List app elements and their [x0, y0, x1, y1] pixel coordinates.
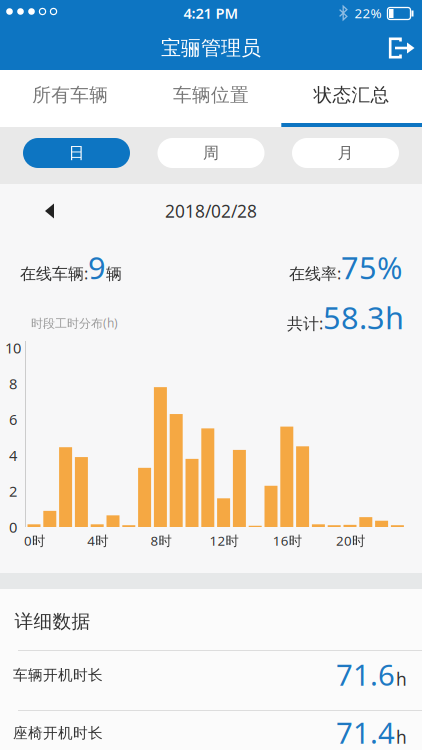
staticText: 日: [68, 143, 84, 163]
staticText: 12时: [210, 532, 239, 549]
staticText: 10: [5, 338, 21, 357]
staticText: 车辆开机时长: [13, 666, 103, 684]
button[interactable]: 状态汇总: [281, 70, 422, 120]
staticText: 4:21: [183, 3, 211, 23]
staticText: 2018/02/28: [165, 199, 257, 222]
button[interactable]: 退出登录: [384, 33, 418, 63]
staticText: 6: [9, 410, 17, 429]
staticText: 22%: [354, 4, 381, 22]
button[interactable]: 前一天: [34, 198, 60, 224]
button[interactable]: 月: [292, 138, 399, 168]
staticText: 2: [9, 481, 17, 501]
staticText: 在线车辆:: [20, 263, 88, 284]
staticText: 详细数据: [14, 610, 90, 633]
staticText: 周: [203, 143, 219, 163]
button[interactable]: 周: [157, 138, 264, 168]
staticText: 状态汇总: [314, 83, 390, 106]
staticText: 71.6: [336, 655, 395, 694]
staticText: 月: [337, 143, 353, 163]
staticText: 58.3h: [323, 297, 404, 338]
staticText: 4时: [87, 532, 108, 549]
staticText: PM: [215, 3, 238, 23]
staticText: 8时: [150, 532, 171, 549]
staticText: 宝骊管理员: [161, 36, 261, 60]
staticText: 时段工时分布(h): [31, 315, 118, 331]
button[interactable]: 车辆位置: [141, 70, 281, 120]
staticText: 所有车辆: [32, 83, 108, 106]
staticText: 0时: [24, 532, 45, 549]
staticText: 在线率:: [289, 263, 341, 284]
button[interactable]: 所有车辆: [0, 70, 141, 120]
staticText: 9: [88, 247, 106, 288]
staticText: 共计:: [287, 313, 323, 334]
staticText: 8: [9, 374, 17, 393]
staticText: h: [396, 668, 407, 691]
staticText: 车辆位置: [173, 83, 249, 106]
button[interactable]: 日: [23, 138, 130, 168]
staticText: 4: [9, 445, 17, 465]
staticText: h: [396, 726, 407, 749]
staticText: 16时: [273, 532, 302, 549]
staticText: 71.4: [336, 713, 395, 750]
staticText: 座椅开机时长: [13, 724, 103, 742]
staticText: 75%: [341, 247, 402, 288]
staticText: 辆: [106, 264, 122, 284]
staticText: 0: [9, 517, 17, 537]
staticText: 20时: [336, 532, 365, 549]
